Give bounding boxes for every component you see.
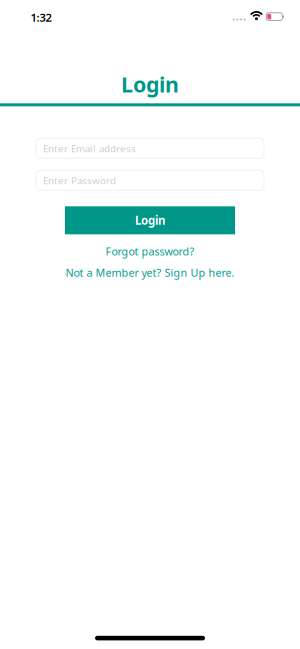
button[interactable]: Forgot password? xyxy=(105,244,194,259)
staticText: Forgot password? xyxy=(105,244,194,259)
button[interactable]: Not a Member yet? Sign Up here. xyxy=(65,266,234,280)
staticText: Enter Password xyxy=(43,174,116,187)
staticText: Not a Member yet? Sign Up here. xyxy=(65,266,234,280)
staticText: Login xyxy=(135,213,165,228)
button[interactable]: Enter Email address xyxy=(36,138,264,158)
button[interactable]: Login xyxy=(65,206,235,234)
staticText: 1:32 xyxy=(30,10,51,25)
staticText: Login xyxy=(121,70,179,98)
button[interactable]: Enter Password xyxy=(36,170,264,190)
staticText: Enter Email address xyxy=(43,142,136,155)
